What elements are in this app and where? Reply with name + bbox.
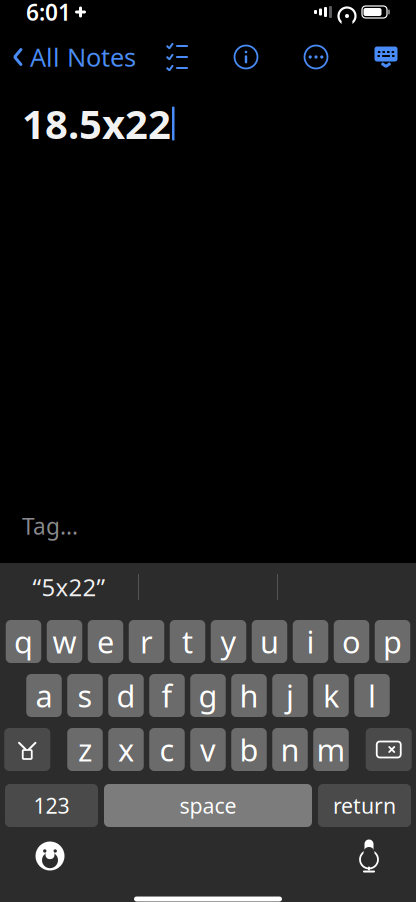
button[interactable]: Dictate <box>347 830 391 882</box>
button[interactable]: w <box>47 620 82 663</box>
staticText: g <box>198 675 217 716</box>
button[interactable]: r <box>129 620 164 663</box>
button[interactable]: “5x22” <box>0 563 138 611</box>
staticText: 123 <box>33 791 69 820</box>
staticText: j <box>286 675 294 716</box>
button[interactable]: m <box>313 728 349 771</box>
staticText: a <box>35 675 52 716</box>
staticText: x <box>118 729 134 770</box>
button[interactable]: b <box>231 728 267 771</box>
staticText: w <box>52 621 76 662</box>
button[interactable]: More <box>294 35 338 79</box>
button[interactable]: return <box>318 784 411 827</box>
staticText: p <box>383 621 402 662</box>
staticText: i <box>306 621 314 662</box>
button[interactable]: q <box>6 620 41 663</box>
staticText: u <box>260 621 279 662</box>
staticText: e <box>97 621 114 662</box>
button[interactable]: space <box>104 784 312 827</box>
staticText: n <box>280 729 299 770</box>
staticText: b <box>239 729 258 770</box>
staticText: h <box>239 675 258 716</box>
button[interactable]: All Notes <box>0 32 136 82</box>
staticText: c <box>159 729 174 770</box>
button[interactable]: u <box>252 620 287 663</box>
staticText: 6:01 <box>26 0 71 27</box>
staticText: m <box>316 729 345 770</box>
button[interactable]: j <box>272 674 308 717</box>
button[interactable]: k <box>313 674 349 717</box>
button[interactable]: h <box>231 674 267 717</box>
staticText: o <box>342 621 361 662</box>
staticText: d <box>116 675 135 716</box>
button[interactable]: Delete <box>366 728 412 771</box>
button[interactable]: s <box>67 674 103 717</box>
button[interactable]: p <box>375 620 410 663</box>
button[interactable]: Info <box>224 35 268 79</box>
staticText: All Notes <box>30 40 136 74</box>
button[interactable]: l <box>354 674 390 717</box>
staticText: return <box>333 791 396 820</box>
button[interactable]: z <box>67 728 103 771</box>
button[interactable]: f <box>149 674 185 717</box>
staticText: “5x22” <box>32 571 105 603</box>
button[interactable]: Hide Keyboard <box>364 35 408 79</box>
staticText: space <box>179 791 236 820</box>
button[interactable]: t <box>170 620 205 663</box>
button[interactable]: Shift <box>4 728 50 771</box>
button[interactable]: o <box>334 620 369 663</box>
button[interactable]: g <box>190 674 226 717</box>
button[interactable]: a <box>26 674 62 717</box>
button[interactable]: Emoji <box>25 831 75 881</box>
button[interactable]: x <box>108 728 144 771</box>
button[interactable]: d <box>108 674 144 717</box>
staticText: f <box>161 675 172 716</box>
button[interactable]: Checklist <box>156 38 198 76</box>
staticText: s <box>77 675 92 716</box>
button[interactable]: i <box>293 620 328 663</box>
staticText: q <box>14 621 33 662</box>
staticText: r <box>140 621 153 662</box>
button[interactable]: c <box>149 728 185 771</box>
button[interactable]: v <box>190 728 226 771</box>
button[interactable]: n <box>272 728 308 771</box>
staticText: v <box>200 729 216 770</box>
button[interactable]: y <box>211 620 246 663</box>
staticText: k <box>323 675 339 716</box>
staticText: 18.5x22 <box>22 97 171 150</box>
staticText: t <box>182 621 193 662</box>
staticText: Tag... <box>22 511 78 541</box>
button[interactable]: e <box>88 620 123 663</box>
staticText: z <box>78 729 92 770</box>
staticText: l <box>368 675 376 716</box>
button[interactable]: 123 <box>5 784 98 827</box>
staticText: y <box>220 621 236 662</box>
